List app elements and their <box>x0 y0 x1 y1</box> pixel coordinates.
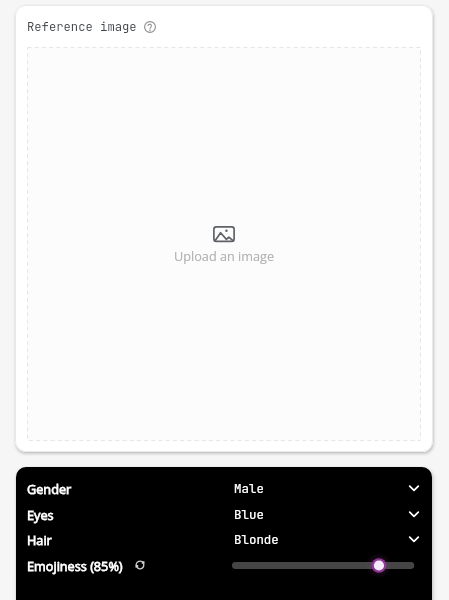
staticText: Male <box>234 480 264 496</box>
staticText: Reference image <box>27 19 137 35</box>
button[interactable]: Reference image <box>27 19 156 35</box>
staticText: Gender <box>27 480 72 497</box>
staticText: Eyes <box>27 506 54 523</box>
button[interactable]: Gender <box>16 476 432 500</box>
button[interactable]: Upload an image <box>27 47 421 441</box>
staticText: Emojiness (85%) <box>27 557 123 574</box>
staticText: Blonde <box>234 531 279 547</box>
other: Open dropdown <box>408 508 420 520</box>
staticText: Hair <box>27 531 52 548</box>
other: Open dropdown <box>408 533 420 545</box>
button[interactable] <box>228 553 417 577</box>
button[interactable]: Eyes <box>16 502 432 526</box>
staticText: Upload an image <box>174 247 275 264</box>
other: Help <box>144 21 156 33</box>
other: Reset <box>135 560 145 570</box>
staticText: Blue <box>234 506 264 522</box>
button[interactable]: Hair <box>16 527 432 551</box>
other: Open dropdown <box>408 482 420 494</box>
